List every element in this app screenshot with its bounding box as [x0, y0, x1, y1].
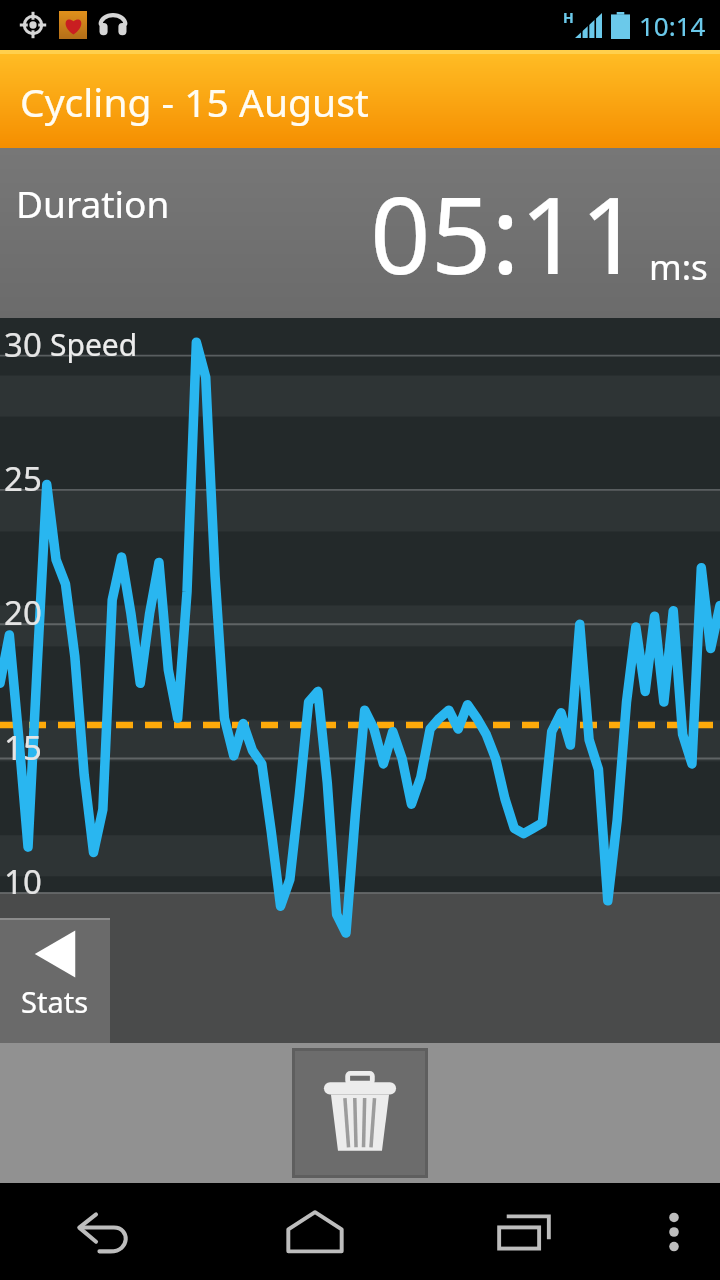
button[interactable]: Stats [0, 918, 110, 1043]
staticText: 25 [4, 456, 42, 501]
staticText: 10 [4, 859, 42, 904]
button[interactable]: Cycling - 15 August [0, 54, 720, 148]
staticText: 30 [4, 322, 42, 367]
staticText: Stats [21, 982, 89, 1021]
button[interactable]: Recent apps [419, 1183, 628, 1280]
staticText: 05:11 [370, 161, 641, 305]
staticText: 15 [4, 725, 42, 770]
staticText: 20 [4, 590, 42, 635]
staticText: 10:14 [639, 8, 706, 43]
staticText: m:s [649, 243, 708, 291]
button[interactable]: More options [628, 1183, 720, 1280]
button[interactable]: Duration [0, 148, 720, 318]
staticText: Duration [16, 178, 170, 228]
staticText: H [563, 8, 574, 27]
staticText: Speed [50, 324, 138, 365]
button[interactable]: Back [0, 1183, 210, 1280]
button[interactable]: Delete [295, 1051, 425, 1175]
button[interactable]: Home [210, 1183, 419, 1280]
staticText: Cycling - 15 August [20, 75, 369, 128]
